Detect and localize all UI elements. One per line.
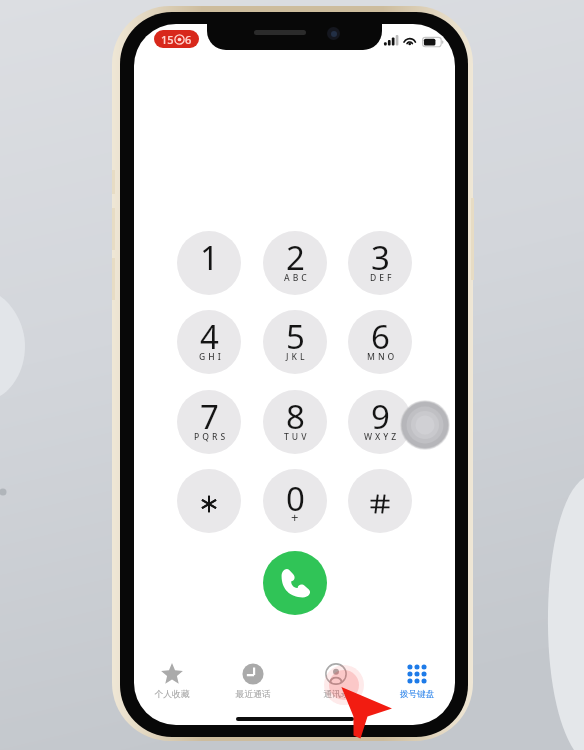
staticText: 8 [286, 394, 305, 439]
staticText: 最近通话 [235, 689, 271, 700]
staticText: 9 [371, 394, 390, 439]
staticText: 个人收藏 [154, 689, 190, 700]
button[interactable]: 5 [263, 310, 327, 374]
staticText: 15 [161, 32, 174, 47]
staticText: 1 [200, 235, 219, 280]
staticText: + [291, 508, 299, 526]
button[interactable]: 8 [263, 390, 327, 454]
staticText: 0 [286, 476, 305, 521]
button[interactable]: 拨号键盘 [384, 663, 450, 700]
staticText: 6 [185, 32, 192, 47]
button[interactable] [348, 469, 412, 533]
staticText: 4 [200, 314, 219, 359]
button[interactable]: 7 [177, 390, 241, 454]
button[interactable]: 6 [348, 310, 412, 374]
staticText: 7 [200, 394, 219, 439]
button[interactable]: 2 [263, 231, 327, 295]
staticText: 2 [286, 235, 305, 280]
button[interactable]: 最近通话 [220, 663, 286, 700]
staticText: WXYZ [364, 431, 400, 443]
button[interactable]: 4 [177, 310, 241, 374]
button[interactable]: 个人收藏 [139, 663, 205, 700]
button[interactable] [177, 469, 241, 533]
staticText: ABC [284, 272, 310, 284]
staticText: MNO [367, 351, 398, 363]
button[interactable]: 3 [348, 231, 412, 295]
staticText: 拨号键盘 [399, 689, 435, 700]
button[interactable]: 1 [177, 231, 241, 295]
button[interactable]: 0 [263, 469, 327, 533]
staticText: 5 [286, 314, 305, 359]
staticText: 3 [371, 235, 390, 280]
staticText: DEF [370, 272, 395, 284]
button[interactable]: 9 [348, 390, 412, 454]
other: Tap pointer [0, 0, 584, 750]
staticText: PQRS [194, 431, 229, 443]
button[interactable]: Call [263, 551, 327, 615]
staticText: JKL [286, 351, 308, 363]
staticText: TUV [284, 431, 310, 443]
staticText: 通讯录 [323, 689, 350, 700]
button[interactable]: 通讯录 [303, 663, 369, 700]
staticText: 6 [371, 314, 390, 359]
staticText: GHI [199, 351, 224, 363]
button[interactable]: AssistiveTouch [400, 400, 450, 450]
